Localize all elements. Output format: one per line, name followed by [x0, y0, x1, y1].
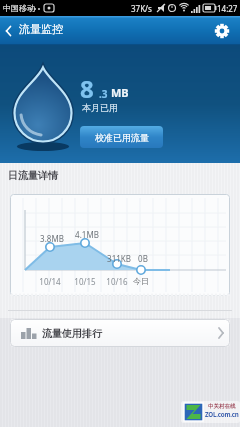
- button[interactable]: 校准已用流量: [80, 126, 163, 148]
- button[interactable]: [206, 16, 240, 45]
- staticText: 0B: [138, 253, 148, 264]
- staticText: 4.1MB: [75, 229, 99, 240]
- staticText: 311KB: [107, 253, 131, 264]
- staticText: 流量监控: [19, 22, 63, 36]
- staticText: 日流量详情: [8, 169, 58, 182]
- staticText: 今日: [133, 276, 149, 286]
- staticText: 流量使用排行: [42, 327, 102, 340]
- staticText: 14:27: [217, 3, 238, 14]
- button[interactable]: 流量使用排行: [10, 319, 230, 347]
- staticText: 10/15: [74, 276, 96, 287]
- staticText: 本月已用: [82, 102, 118, 113]
- staticText: ZOL.com.cn: [205, 410, 239, 418]
- staticText: .3: [99, 87, 108, 101]
- staticText: 10/16: [106, 276, 128, 287]
- staticText: 中国移动: [3, 3, 35, 13]
- staticText: 中关村在线: [208, 403, 236, 410]
- staticText: 10/14: [39, 276, 61, 287]
- staticText: MB: [111, 85, 129, 100]
- staticText: 37K/s: [131, 3, 152, 14]
- button[interactable]: [0, 16, 44, 45]
- staticText: 8: [80, 72, 94, 105]
- staticText: 3.8MB: [40, 233, 64, 244]
- staticText: 校准已用流量: [95, 132, 149, 143]
